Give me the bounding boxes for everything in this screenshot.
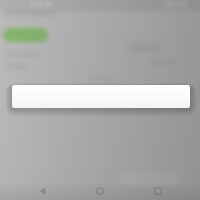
button[interactable]: Back [28,182,58,200]
button[interactable]: Recent apps [143,182,173,200]
button[interactable] [12,85,190,108]
button[interactable]: Home [85,182,115,200]
